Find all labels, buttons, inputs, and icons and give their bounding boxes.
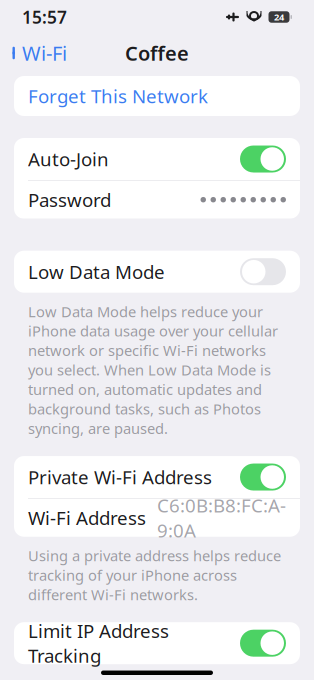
staticText: C6:0B:B8:FC:A9:0A	[157, 493, 286, 543]
staticText: Limit IP address tracking by hiding your…	[28, 673, 283, 680]
button[interactable]: Low Data Mode	[14, 251, 300, 293]
staticText: 24	[274, 11, 284, 23]
staticText: Forget This Network	[28, 84, 208, 108]
button[interactable]: Password	[14, 181, 300, 219]
staticText: Low Data Mode	[28, 259, 165, 284]
button[interactable]: Auto-Join	[14, 138, 300, 180]
staticText: Private Wi-Fi Address	[28, 465, 212, 489]
button[interactable]: Wi-Fi	[0, 35, 77, 71]
button[interactable]: Forget This Network	[14, 76, 300, 116]
staticText: Auto-Join	[28, 147, 109, 171]
button[interactable]: Limit IP Address Tracking	[14, 622, 300, 664]
staticText: Password	[28, 187, 111, 212]
staticText: 15:57	[22, 5, 67, 28]
staticText: Coffee	[125, 40, 189, 66]
staticText: Low Data Mode helps reduce your iPhone d…	[28, 302, 278, 438]
staticText: Wi-Fi	[22, 40, 67, 66]
button[interactable]: Wi-Fi Address	[14, 499, 300, 537]
staticText: Wi-Fi Address	[28, 505, 146, 530]
button[interactable]: Private Wi-Fi Address	[14, 456, 300, 498]
staticText: Using a private address helps reduce tra…	[28, 546, 281, 604]
staticText: Limit IP Address Tracking	[28, 618, 169, 668]
